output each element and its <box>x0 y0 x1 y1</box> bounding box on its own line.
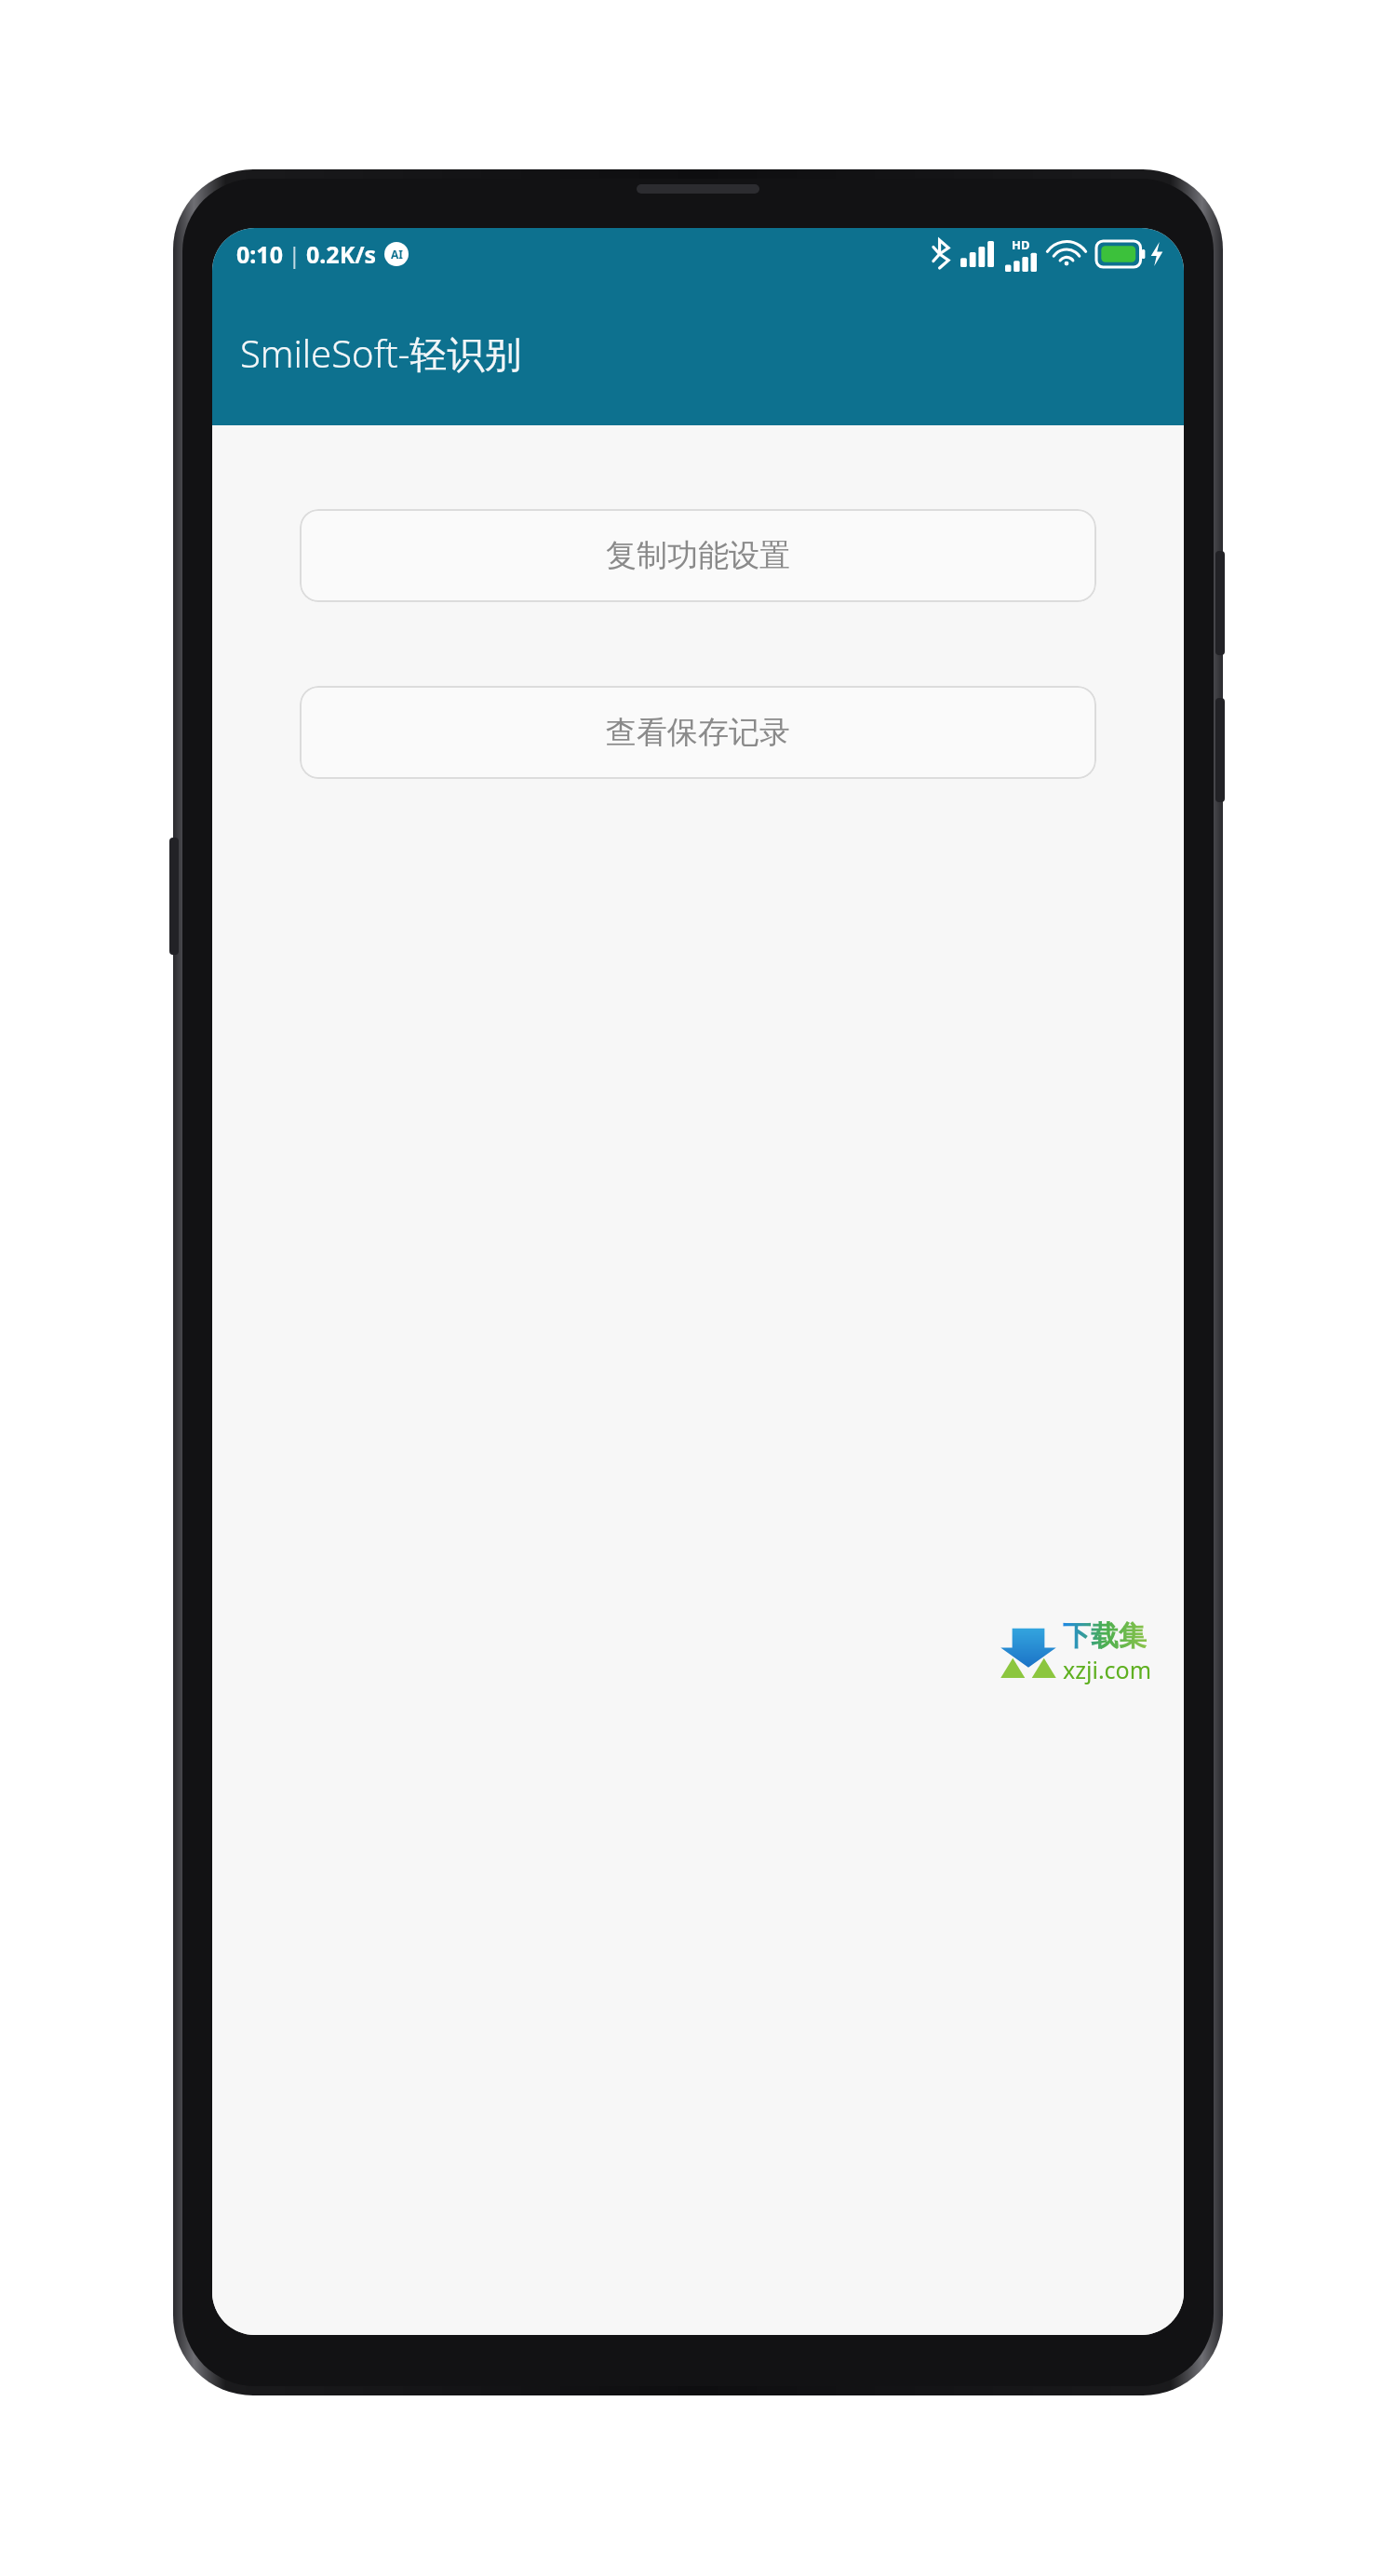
staticText: 0.2K/s <box>306 238 377 270</box>
staticText: AI <box>391 247 403 262</box>
staticText: 下载集 <box>1063 1618 1147 1654</box>
button[interactable]: 复制功能设置 <box>300 509 1096 602</box>
staticText: 查看保存记录 <box>606 713 790 752</box>
staticText: SmileSoft-轻识别 <box>240 328 522 379</box>
staticText: HD <box>1012 236 1030 253</box>
button[interactable]: 查看保存记录 <box>300 686 1096 779</box>
staticText: | <box>289 240 301 269</box>
staticText: xzji.com <box>1063 1654 1152 1685</box>
staticText: 0:10 <box>236 238 283 270</box>
staticText: 复制功能设置 <box>606 536 790 575</box>
